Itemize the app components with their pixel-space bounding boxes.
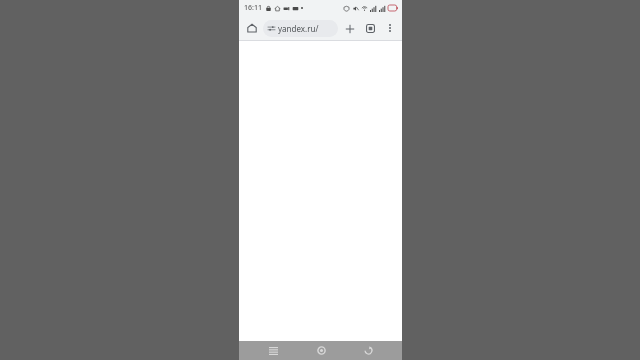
button[interactable]: Recent apps <box>260 341 286 360</box>
staticText: 16:11 <box>244 3 262 13</box>
button[interactable]: Home <box>243 19 261 37</box>
button[interactable]: Home <box>308 341 334 360</box>
button[interactable]: yandex.ru/sear <box>263 20 338 37</box>
button[interactable]: Back <box>355 341 381 360</box>
button[interactable]: New tab <box>341 20 358 37</box>
button[interactable]: Tabs <box>362 20 379 37</box>
button[interactable]: More options <box>382 20 398 36</box>
staticText: yandex.ru/sear <box>278 23 332 34</box>
